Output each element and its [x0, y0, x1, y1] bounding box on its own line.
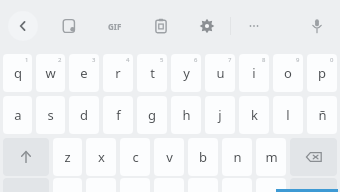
- button[interactable]: x: [86, 138, 116, 176]
- staticText: c: [132, 148, 139, 166]
- button[interactable]: l: [273, 96, 303, 134]
- staticText: b: [199, 148, 207, 166]
- staticText: s: [47, 106, 54, 124]
- staticText: d: [80, 106, 88, 124]
- button[interactable]: More options: [239, 11, 269, 41]
- button[interactable]: ñ: [307, 96, 337, 134]
- button[interactable]: u: [205, 54, 235, 92]
- staticText: n: [233, 148, 242, 166]
- staticText: GIF: [108, 21, 122, 32]
- button[interactable]: r: [103, 54, 133, 92]
- staticText: 7: [228, 56, 232, 64]
- staticText: h: [182, 106, 191, 124]
- button[interactable]: p: [307, 54, 337, 92]
- button[interactable]: Backspace: [290, 138, 337, 176]
- staticText: ñ: [318, 106, 327, 124]
- staticText: y: [183, 64, 190, 82]
- button[interactable]: m: [256, 138, 286, 176]
- staticText: q: [14, 64, 22, 82]
- staticText: z: [64, 148, 71, 166]
- staticText: f: [116, 106, 121, 124]
- button[interactable]: h: [171, 96, 201, 134]
- staticText: 4: [126, 56, 130, 64]
- staticText: 8: [262, 56, 266, 64]
- staticText: x: [98, 148, 105, 166]
- button[interactable]: v: [154, 138, 184, 176]
- button[interactable]: Voice input: [302, 11, 332, 41]
- staticText: o: [284, 64, 292, 82]
- button[interactable]: Key: [256, 178, 286, 192]
- button[interactable]: q: [3, 54, 32, 92]
- button[interactable]: a: [3, 96, 32, 134]
- staticText: 9: [296, 56, 300, 64]
- staticText: k: [251, 106, 258, 124]
- staticText: v: [166, 148, 173, 166]
- button[interactable]: Enter: [290, 178, 337, 192]
- button[interactable]: d: [69, 96, 99, 134]
- staticText: 3: [92, 56, 96, 64]
- staticText: p: [318, 64, 326, 82]
- button[interactable]: c: [120, 138, 150, 176]
- staticText: 6: [194, 56, 198, 64]
- button[interactable]: e: [69, 54, 99, 92]
- button[interactable]: y: [171, 54, 201, 92]
- staticText: m: [265, 148, 278, 166]
- button[interactable]: s: [36, 96, 65, 134]
- button[interactable]: z: [53, 138, 82, 176]
- staticText: u: [216, 64, 225, 82]
- button[interactable]: o: [273, 54, 303, 92]
- button[interactable]: t: [137, 54, 167, 92]
- button[interactable]: w: [36, 54, 65, 92]
- staticText: i: [252, 64, 256, 82]
- staticText: r: [115, 64, 121, 82]
- button[interactable]: i: [239, 54, 269, 92]
- button[interactable]: f: [103, 96, 133, 134]
- staticText: l: [286, 106, 290, 124]
- button[interactable]: k: [239, 96, 269, 134]
- button[interactable]: GIF: [100, 11, 130, 41]
- button[interactable]: Clipboard: [146, 11, 176, 41]
- button[interactable]: Shift: [3, 138, 49, 176]
- staticText: t: [150, 64, 155, 82]
- staticText: 2: [58, 56, 62, 64]
- staticText: 0: [330, 56, 334, 64]
- button[interactable]: Settings: [192, 11, 222, 41]
- staticText: a: [14, 106, 22, 124]
- staticText: j: [218, 106, 222, 124]
- button[interactable]: Stickers: [54, 11, 84, 41]
- staticText: w: [45, 64, 56, 82]
- staticText: g: [148, 106, 156, 124]
- button[interactable]: b: [188, 138, 218, 176]
- staticText: 1: [25, 56, 29, 64]
- button[interactable]: n: [222, 138, 252, 176]
- button[interactable]: g: [137, 96, 167, 134]
- staticText: 5: [160, 56, 164, 64]
- button[interactable]: j: [205, 96, 235, 134]
- staticText: e: [80, 64, 88, 82]
- button[interactable]: Back: [8, 11, 38, 41]
